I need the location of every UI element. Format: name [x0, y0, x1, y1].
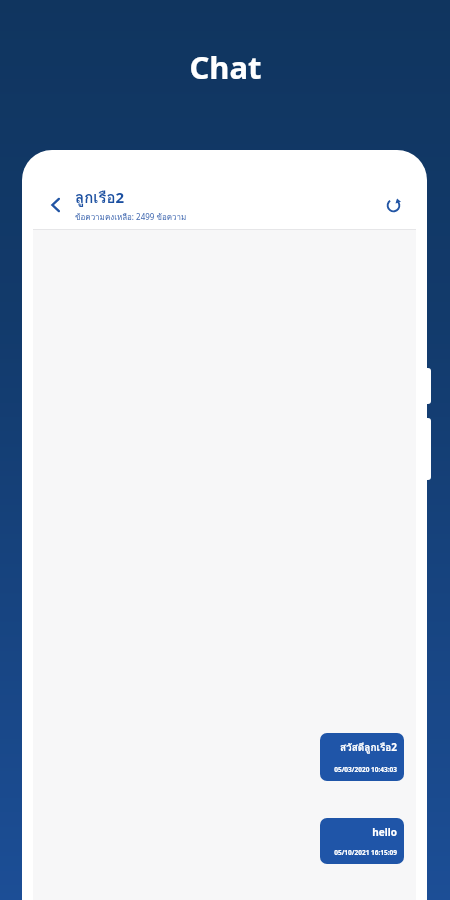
staticText: 05/10/2021 16:15:09	[334, 848, 397, 857]
staticText: ลูกเรือ2	[75, 186, 125, 210]
button[interactable]: Back	[39, 188, 73, 222]
button[interactable]: ลูกเรือ2	[75, 186, 376, 224]
staticText: hello	[372, 825, 397, 839]
staticText: Chat	[189, 46, 262, 88]
button[interactable]: hello	[320, 818, 404, 864]
button[interactable]: Refresh	[376, 188, 410, 222]
staticText: ข้อความคงเหลือ: 2499 ข้อความ	[75, 211, 187, 224]
button[interactable]: สวัสดีลูกเรือ2	[320, 733, 404, 781]
staticText: 05/03/2020 10:43:03	[334, 765, 397, 774]
staticText: สวัสดีลูกเรือ2	[340, 740, 397, 756]
